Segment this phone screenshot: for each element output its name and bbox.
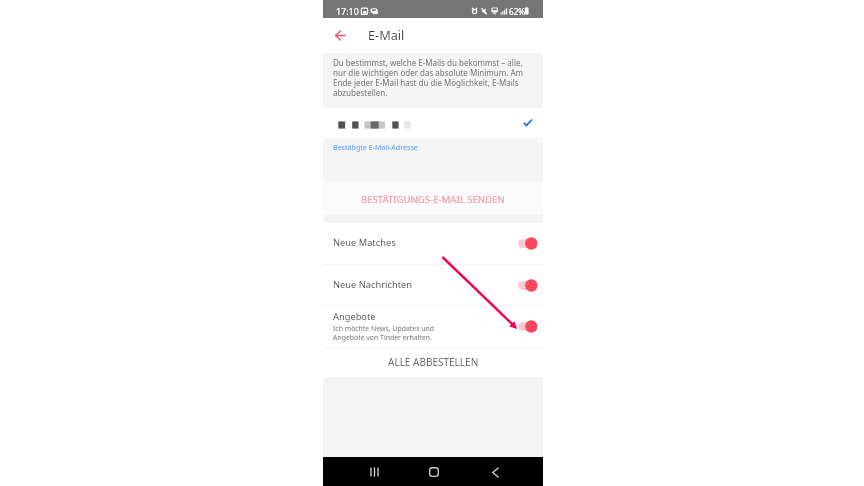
button[interactable]: BESTÄTIGUNGS-E-MAIL SENDEN xyxy=(323,183,543,215)
button[interactable]: Home xyxy=(423,461,445,483)
button[interactable]: E-Mail address xyxy=(323,108,543,138)
staticText: 17:10 xyxy=(336,5,359,17)
button[interactable]: ALLE ABBESTELLEN xyxy=(323,348,543,376)
staticText: Ich möchte News, Updates und Angebote vo… xyxy=(333,324,434,342)
button[interactable]: Neue Matches aktiviert xyxy=(518,236,538,251)
button[interactable]: Neue Nachrichten aktiviert xyxy=(518,278,538,293)
staticText: ALLE ABBESTELLEN xyxy=(388,355,479,369)
button[interactable]: Angebote aktiviert xyxy=(518,319,538,334)
button[interactable]: Back xyxy=(330,24,352,46)
button[interactable]: Angebote xyxy=(323,305,543,347)
staticText: 62% xyxy=(509,6,526,17)
staticText: Du bestimmst, welche E-Mails du bekommst… xyxy=(333,57,523,98)
button[interactable]: Neue Nachrichten xyxy=(323,265,543,305)
button[interactable]: Back xyxy=(484,461,506,483)
staticText: Angebote xyxy=(333,310,376,323)
staticText: Neue Matches xyxy=(333,236,396,249)
staticText: Bestätigte E-Mail-Adresse xyxy=(333,142,418,152)
button[interactable]: Neue Matches xyxy=(323,223,543,264)
button[interactable]: Recents xyxy=(363,461,385,483)
staticText: Neue Nachrichten xyxy=(333,278,412,291)
staticText: BESTÄTIGUNGS-E-MAIL SENDEN xyxy=(361,193,505,206)
staticText: E-Mail xyxy=(368,26,405,43)
